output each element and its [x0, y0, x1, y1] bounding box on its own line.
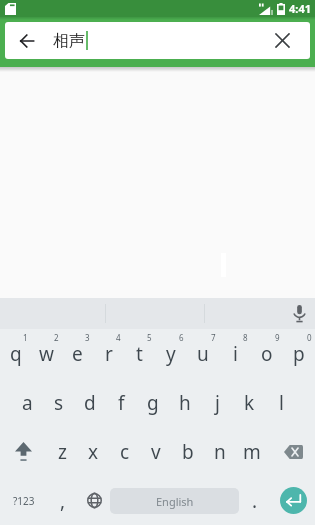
staticText: 7	[211, 332, 216, 343]
button[interactable]	[5, 22, 49, 59]
staticText: d	[84, 390, 96, 416]
staticText: s	[54, 390, 64, 416]
button[interactable]: k	[233, 378, 265, 427]
button[interactable]: English	[110, 488, 239, 514]
staticText: e	[72, 341, 83, 367]
staticText: ?123	[13, 494, 35, 508]
staticText: 5	[147, 332, 152, 343]
staticText: y	[166, 341, 176, 367]
staticText: k	[244, 390, 255, 416]
button[interactable]	[271, 476, 315, 525]
staticText: m	[243, 439, 261, 465]
button[interactable]: u	[187, 329, 219, 378]
staticText: f	[118, 390, 125, 416]
staticText: 9	[275, 332, 280, 343]
button[interactable]: y	[155, 329, 187, 378]
button[interactable]: a	[12, 378, 43, 427]
button[interactable]: p	[283, 329, 315, 378]
staticText: English	[156, 494, 194, 509]
button[interactable]: v	[140, 427, 172, 476]
button[interactable]: n	[204, 427, 236, 476]
staticText: c	[120, 439, 130, 465]
button[interactable]: d	[74, 378, 105, 427]
button[interactable]: ,	[47, 476, 78, 525]
button[interactable]: l	[265, 378, 297, 427]
staticText: 3	[85, 332, 90, 343]
staticText: 8	[243, 332, 248, 343]
button[interactable]: w	[31, 329, 62, 378]
staticText: v	[151, 439, 161, 465]
staticText: h	[179, 390, 191, 416]
button[interactable]: e	[62, 329, 93, 378]
staticText: z	[58, 439, 67, 465]
staticText: ,	[60, 488, 66, 514]
staticText: l	[279, 390, 284, 416]
button[interactable]	[288, 303, 310, 325]
button[interactable]: c	[109, 427, 140, 476]
button[interactable]: m	[236, 427, 268, 476]
staticText: 2	[54, 332, 59, 343]
staticText: w	[39, 341, 54, 367]
staticText: .	[252, 488, 258, 514]
button[interactable]: ?123	[0, 476, 47, 525]
staticText: i	[233, 341, 238, 367]
staticText: p	[293, 341, 305, 367]
staticText: g	[147, 390, 159, 416]
button[interactable]: g	[137, 378, 169, 427]
staticText: t	[136, 341, 143, 367]
button[interactable]	[0, 427, 47, 476]
button[interactable]: t	[124, 329, 155, 378]
button[interactable]	[78, 476, 110, 525]
button[interactable]: o	[251, 329, 283, 378]
button[interactable]: r	[93, 329, 124, 378]
button[interactable]: z	[47, 427, 78, 476]
staticText: 1	[23, 332, 28, 343]
staticText: 4	[116, 332, 121, 343]
staticText: n	[214, 439, 226, 465]
staticText: a	[22, 390, 33, 416]
button[interactable]: h	[169, 378, 201, 427]
staticText: u	[197, 341, 209, 367]
staticText: o	[261, 341, 273, 367]
button[interactable]: q	[0, 329, 31, 378]
button[interactable]: j	[201, 378, 233, 427]
button[interactable]	[263, 22, 301, 59]
staticText: q	[10, 341, 22, 367]
staticText: j	[215, 390, 220, 416]
button[interactable]: i	[219, 329, 251, 378]
button[interactable]: s	[43, 378, 74, 427]
button[interactable]: 相声	[5, 22, 310, 59]
button[interactable]: b	[172, 427, 204, 476]
staticText: 0	[307, 332, 312, 343]
staticText: 6	[179, 332, 184, 343]
staticText: 相声	[53, 31, 85, 51]
button[interactable]: x	[78, 427, 109, 476]
staticText: r	[105, 341, 113, 367]
button[interactable]	[268, 427, 315, 476]
staticText: x	[88, 439, 99, 465]
staticText: 4:41	[289, 1, 311, 16]
button[interactable]: .	[239, 476, 271, 525]
button[interactable]: f	[105, 378, 137, 427]
staticText: b	[182, 439, 194, 465]
